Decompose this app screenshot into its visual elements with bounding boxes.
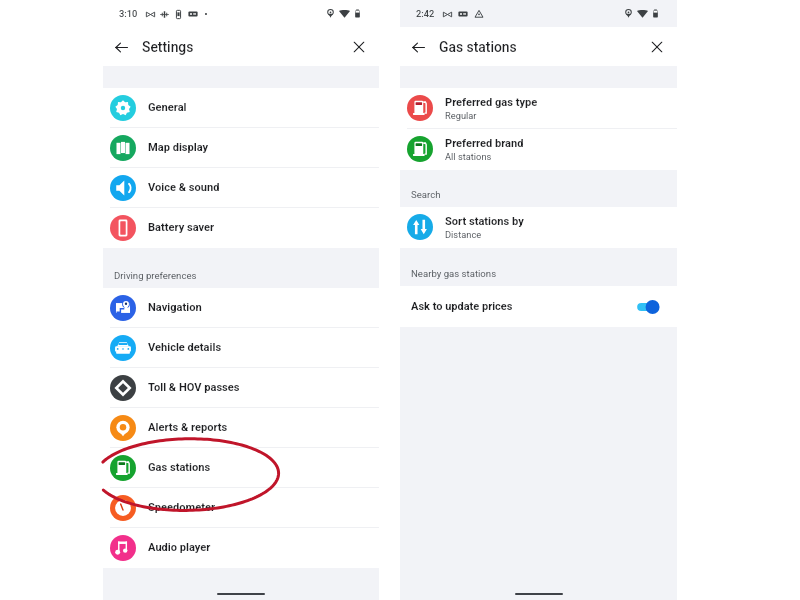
staticText: Settings xyxy=(142,39,194,55)
staticText: Driving preferences xyxy=(114,270,197,281)
staticText: Speedometer xyxy=(148,501,215,514)
staticText: Search xyxy=(411,189,441,200)
staticText: Sort stations by xyxy=(445,215,524,228)
button[interactable]: Audio player xyxy=(103,528,379,567)
staticText: Ask to update prices xyxy=(411,300,513,313)
button[interactable]: Navigation xyxy=(103,288,379,327)
staticText: Distance xyxy=(445,229,482,240)
staticText: Nearby gas stations xyxy=(411,268,497,279)
staticText: General xyxy=(148,101,187,114)
staticText: 3:10 xyxy=(119,8,138,19)
staticText: Map display xyxy=(148,141,209,154)
staticText: 2:42 xyxy=(416,8,435,19)
staticText: Navigation xyxy=(148,301,202,314)
staticText: Preferred brand xyxy=(445,137,524,150)
staticText: Battery saver xyxy=(148,221,215,234)
button[interactable]: Preferred brand xyxy=(400,129,677,169)
staticText: Voice & sound xyxy=(148,181,220,194)
button[interactable]: Toll & HOV passes xyxy=(103,368,379,407)
staticText: Regular xyxy=(445,110,477,121)
button[interactable]: Back xyxy=(406,35,430,59)
staticText: Gas stations xyxy=(439,39,517,55)
staticText: All stations xyxy=(445,151,492,162)
button[interactable]: Close xyxy=(645,35,669,59)
button[interactable]: Battery saver xyxy=(103,208,379,247)
button[interactable]: Speedometer xyxy=(103,488,379,527)
staticText: Alerts & reports xyxy=(148,421,228,434)
button[interactable]: Back xyxy=(109,35,133,59)
button[interactable]: General xyxy=(103,88,379,127)
staticText: Audio player xyxy=(148,541,211,554)
staticText: Toll & HOV passes xyxy=(148,381,240,394)
button[interactable]: Gas stations xyxy=(103,448,379,487)
staticText: Gas stations xyxy=(148,461,211,474)
button[interactable]: Ask to update prices xyxy=(400,286,677,327)
staticText: Preferred gas type xyxy=(445,96,538,109)
button[interactable]: Sort stations by xyxy=(400,207,677,247)
button[interactable]: Voice & sound xyxy=(103,168,379,207)
button[interactable]: Close xyxy=(347,35,371,59)
staticText: Vehicle details xyxy=(148,341,222,354)
button[interactable]: Preferred gas type xyxy=(400,88,677,128)
button[interactable]: Alerts & reports xyxy=(103,408,379,447)
button[interactable]: Map display xyxy=(103,128,379,167)
button[interactable]: Vehicle details xyxy=(103,328,379,367)
